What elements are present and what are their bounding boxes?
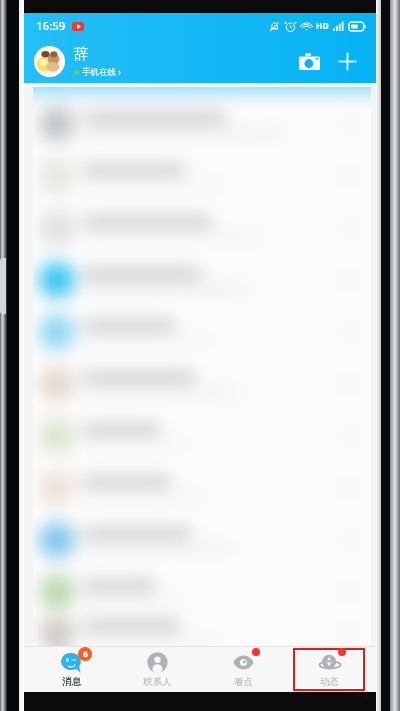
- button[interactable]: [33, 98, 371, 150]
- button[interactable]: Add: [330, 44, 364, 78]
- staticText: 辞: [74, 45, 89, 64]
- button[interactable]: 6: [32, 646, 110, 692]
- button[interactable]: Profile avatar: [36, 48, 63, 75]
- staticText: 16:59: [36, 18, 66, 34]
- button[interactable]: 辞: [74, 45, 292, 78]
- button[interactable]: [33, 306, 371, 358]
- button[interactable]: 动态: [290, 646, 368, 692]
- button[interactable]: 联系人: [118, 646, 196, 692]
- staticText: HD: [316, 20, 329, 32]
- staticText: 看点: [234, 676, 253, 688]
- staticText: 动态: [320, 676, 339, 688]
- button[interactable]: [33, 410, 371, 462]
- staticText: 联系人: [143, 676, 172, 688]
- button[interactable]: [33, 358, 371, 410]
- button[interactable]: [33, 254, 371, 306]
- button[interactable]: [33, 618, 371, 646]
- button[interactable]: Camera: [292, 44, 326, 78]
- button[interactable]: [33, 462, 371, 514]
- button[interactable]: 看点: [204, 646, 282, 692]
- button[interactable]: [33, 150, 371, 202]
- staticText: 6: [83, 648, 88, 660]
- button[interactable]: [33, 202, 371, 254]
- button[interactable]: [33, 514, 371, 566]
- staticText: 消息: [62, 676, 81, 688]
- button[interactable]: [33, 566, 371, 618]
- staticText: 手机在线 ›: [82, 66, 121, 78]
